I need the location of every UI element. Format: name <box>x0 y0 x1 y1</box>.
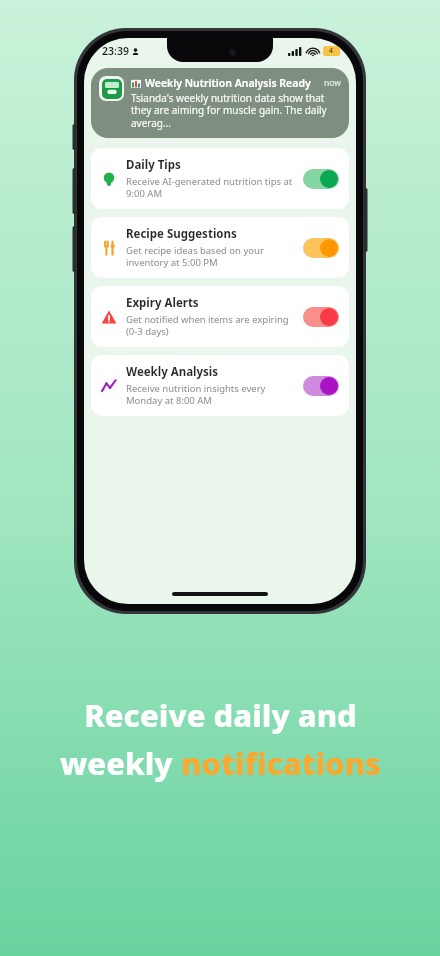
staticText: Daily Tips <box>126 157 181 173</box>
button[interactable]: Weekly Analysis toggle <box>303 376 339 396</box>
staticText: Expiry Alerts <box>126 295 199 311</box>
button[interactable]: Recipe Suggestions toggle <box>303 238 339 258</box>
staticText: Tsianda's weekly nutrition data show tha… <box>131 91 341 130</box>
staticText: 23:39 <box>102 44 129 58</box>
staticText: Get recipe ideas based on your inventory… <box>126 244 297 269</box>
staticText: 4 <box>329 46 334 56</box>
staticText: Weekly Analysis <box>126 364 219 380</box>
staticText: Recipe Suggestions <box>126 226 237 242</box>
staticText: now <box>324 77 341 89</box>
staticText: Receive daily and <box>84 694 357 736</box>
button[interactable]: Daily Tips toggle <box>303 169 339 189</box>
staticText: Receive nutrition insights every Monday … <box>126 382 297 407</box>
staticText: Weekly Nutrition Analysis Ready <box>145 76 311 90</box>
button[interactable]: Expiry Alerts <box>91 286 349 347</box>
staticText: Receive AI-generated nutrition tips at 9… <box>126 175 297 200</box>
staticText: weekly <box>60 742 181 784</box>
staticText: notifications <box>181 742 381 784</box>
staticText: Get notified when items are expiring (0-… <box>126 313 297 338</box>
button[interactable]: Recipe Suggestions <box>91 217 349 278</box>
button[interactable]: Daily Tips <box>91 148 349 209</box>
button[interactable]: Weekly Nutrition Analysis Ready <box>91 68 349 138</box>
button[interactable]: Expiry Alerts toggle <box>303 307 339 327</box>
button[interactable]: Weekly Analysis <box>91 355 349 416</box>
